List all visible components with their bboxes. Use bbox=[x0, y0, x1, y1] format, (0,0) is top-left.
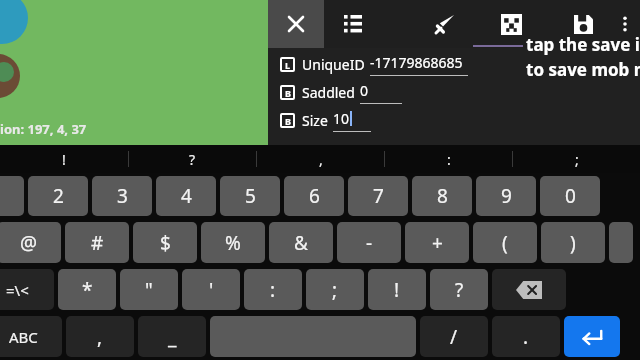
staticText: L bbox=[285, 59, 291, 71]
button[interactable]: ! bbox=[368, 269, 426, 310]
staticText: 8 bbox=[437, 183, 448, 209]
staticText: # bbox=[91, 230, 104, 256]
button[interactable]: : bbox=[385, 145, 512, 173]
staticText: B bbox=[285, 115, 291, 127]
staticText: _ bbox=[168, 324, 177, 350]
button[interactable]: Enter bbox=[564, 316, 620, 357]
button[interactable]: =\< bbox=[0, 269, 54, 310]
staticText: ? bbox=[455, 277, 464, 303]
staticText: ( bbox=[502, 230, 508, 256]
staticText: * bbox=[82, 277, 93, 303]
button[interactable]: ; bbox=[306, 269, 364, 310]
staticText: ! bbox=[394, 277, 400, 303]
staticText: =\< bbox=[6, 280, 29, 300]
button[interactable] bbox=[210, 316, 416, 357]
button[interactable]: 3 bbox=[92, 176, 152, 216]
button[interactable]: _ bbox=[138, 316, 206, 357]
button[interactable]: 9 bbox=[476, 176, 536, 216]
button[interactable]: @ bbox=[0, 222, 61, 263]
button[interactable]: , bbox=[66, 316, 134, 357]
button[interactable]: 6 bbox=[284, 176, 344, 216]
staticText: UniqueID bbox=[302, 55, 365, 74]
button[interactable]: , bbox=[257, 145, 384, 173]
staticText: + bbox=[432, 230, 443, 256]
staticText: ? bbox=[189, 150, 196, 169]
staticText: 7 bbox=[373, 183, 384, 209]
button[interactable]: $ bbox=[133, 222, 197, 263]
staticText: 6 bbox=[309, 183, 320, 209]
button[interactable]: B bbox=[268, 78, 640, 106]
staticText: 0 bbox=[360, 81, 369, 100]
button[interactable]: & bbox=[269, 222, 333, 263]
staticText: % bbox=[225, 230, 241, 256]
button[interactable]: 1 bbox=[0, 176, 24, 216]
button[interactable]: More options bbox=[610, 0, 640, 48]
button[interactable]: : bbox=[244, 269, 302, 310]
button[interactable]: Backspace bbox=[492, 269, 566, 310]
staticText: ; bbox=[575, 150, 579, 169]
button[interactable]: B bbox=[268, 106, 640, 134]
staticText: : bbox=[447, 150, 451, 169]
button[interactable]: L bbox=[268, 50, 640, 78]
staticText: B bbox=[285, 87, 291, 99]
button[interactable]: ! bbox=[0, 145, 128, 173]
staticText: 9 bbox=[501, 183, 512, 209]
button[interactable]: # bbox=[65, 222, 129, 263]
staticText: ; bbox=[332, 277, 338, 303]
staticText: @ bbox=[20, 230, 38, 256]
button[interactable]: ; bbox=[513, 145, 640, 173]
button[interactable]: 0 bbox=[540, 176, 600, 216]
button[interactable]: Save bbox=[556, 0, 610, 48]
button[interactable]: Mob type bbox=[488, 0, 534, 48]
button[interactable]: ' bbox=[182, 269, 240, 310]
button[interactable]: % bbox=[201, 222, 265, 263]
staticText: 10 bbox=[333, 109, 350, 128]
button[interactable]: 2 bbox=[28, 176, 88, 216]
staticText: , bbox=[97, 324, 103, 350]
button[interactable]: - bbox=[337, 222, 401, 263]
staticText: -17179868685 bbox=[370, 53, 463, 72]
button[interactable]: List bbox=[324, 0, 382, 48]
staticText: 5 bbox=[245, 183, 256, 209]
staticText: - bbox=[366, 230, 373, 256]
button[interactable]: Equipment bbox=[420, 0, 470, 48]
staticText: . bbox=[523, 324, 529, 350]
staticText: ABC bbox=[9, 327, 38, 347]
button[interactable]: ( bbox=[473, 222, 537, 263]
button[interactable]: 4 bbox=[156, 176, 216, 216]
staticText: ' bbox=[209, 277, 214, 303]
staticText: to save mob n bbox=[526, 58, 640, 81]
staticText: 4 bbox=[181, 183, 192, 209]
button[interactable]: ? bbox=[129, 145, 256, 173]
button[interactable] bbox=[609, 222, 633, 263]
staticText: ion: 197, 4, 37 bbox=[0, 120, 87, 138]
staticText: " bbox=[145, 277, 153, 303]
button[interactable]: ? bbox=[430, 269, 488, 310]
button[interactable]: ) bbox=[541, 222, 605, 263]
staticText: 2 bbox=[53, 183, 64, 209]
staticText: & bbox=[294, 230, 308, 256]
staticText: 0 bbox=[565, 183, 576, 209]
staticText: $ bbox=[160, 230, 171, 256]
staticText: / bbox=[450, 324, 458, 350]
button[interactable]: + bbox=[405, 222, 469, 263]
staticText: tap the save ic bbox=[526, 33, 640, 56]
staticText: : bbox=[270, 277, 276, 303]
button[interactable]: " bbox=[120, 269, 178, 310]
button[interactable]: 8 bbox=[412, 176, 472, 216]
button[interactable]: . bbox=[492, 316, 560, 357]
button[interactable]: 7 bbox=[348, 176, 408, 216]
button[interactable]: / bbox=[420, 316, 488, 357]
staticText: Saddled bbox=[302, 83, 355, 102]
staticText: Size bbox=[302, 111, 328, 130]
staticText: ! bbox=[62, 150, 66, 169]
staticText: ) bbox=[570, 230, 576, 256]
button[interactable]: Close bbox=[268, 0, 324, 48]
staticText: , bbox=[319, 150, 323, 169]
button[interactable]: ABC bbox=[0, 316, 62, 357]
button[interactable]: * bbox=[58, 269, 116, 310]
staticText: 3 bbox=[117, 183, 128, 209]
button[interactable]: 5 bbox=[220, 176, 280, 216]
